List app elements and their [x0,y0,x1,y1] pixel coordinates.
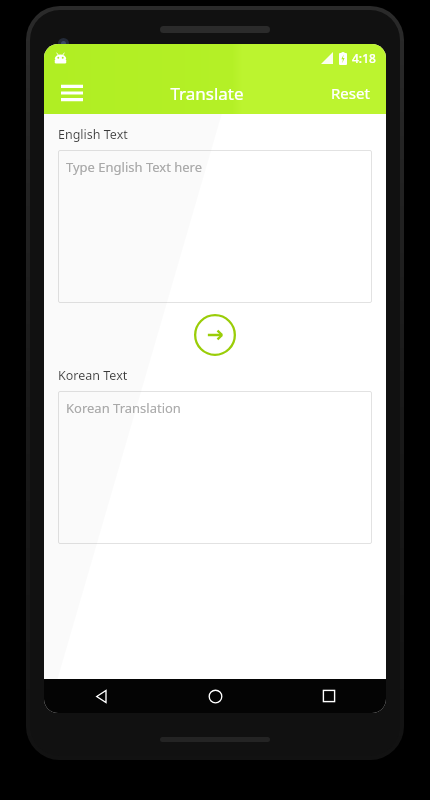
button[interactable]: English text input [58,150,372,303]
button[interactable]: Reset [321,75,380,111]
staticText: English Text [58,126,128,143]
staticText: Korean Translation [66,399,181,417]
staticText: 4:18 [352,50,376,66]
button[interactable]: Recent apps [272,679,386,713]
button[interactable]: Translate [193,313,237,357]
staticText: Korean Text [58,367,128,384]
staticText: Type English Text here [66,158,203,176]
button[interactable]: Korean translation output [58,391,372,544]
staticText: Translate [170,82,244,105]
staticText: Reset [331,83,370,103]
button[interactable]: Back [44,679,158,713]
button[interactable]: Open navigation menu [52,73,92,113]
button[interactable]: Home [158,679,272,713]
